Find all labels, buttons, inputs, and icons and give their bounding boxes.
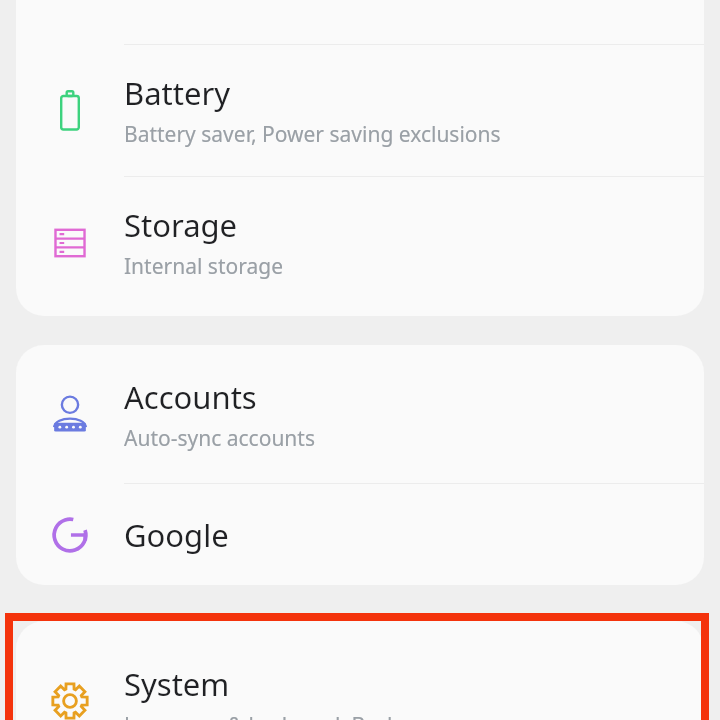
other: Storage [48,221,92,265]
other: Battery [48,89,92,133]
staticText: Battery saver, Power saving exclusions [124,120,501,149]
other: Google [48,513,92,557]
button[interactable]: Storage [16,177,704,308]
button[interactable]: Battery [16,45,704,176]
staticText: Storage [124,204,238,246]
staticText: Language & keyboard, Backup [124,711,425,720]
other: System [48,679,92,720]
staticText: Auto-sync accounts [124,424,315,453]
staticText: System [124,663,230,705]
staticText: Accounts [124,376,257,418]
button[interactable]: Accounts [16,345,704,483]
button[interactable]: Google [16,484,704,585]
other: Accounts [48,392,92,436]
staticText: Internal storage [124,252,283,281]
button[interactable]: System [16,621,704,720]
staticText: Google [124,514,229,556]
staticText: Battery [124,72,231,114]
